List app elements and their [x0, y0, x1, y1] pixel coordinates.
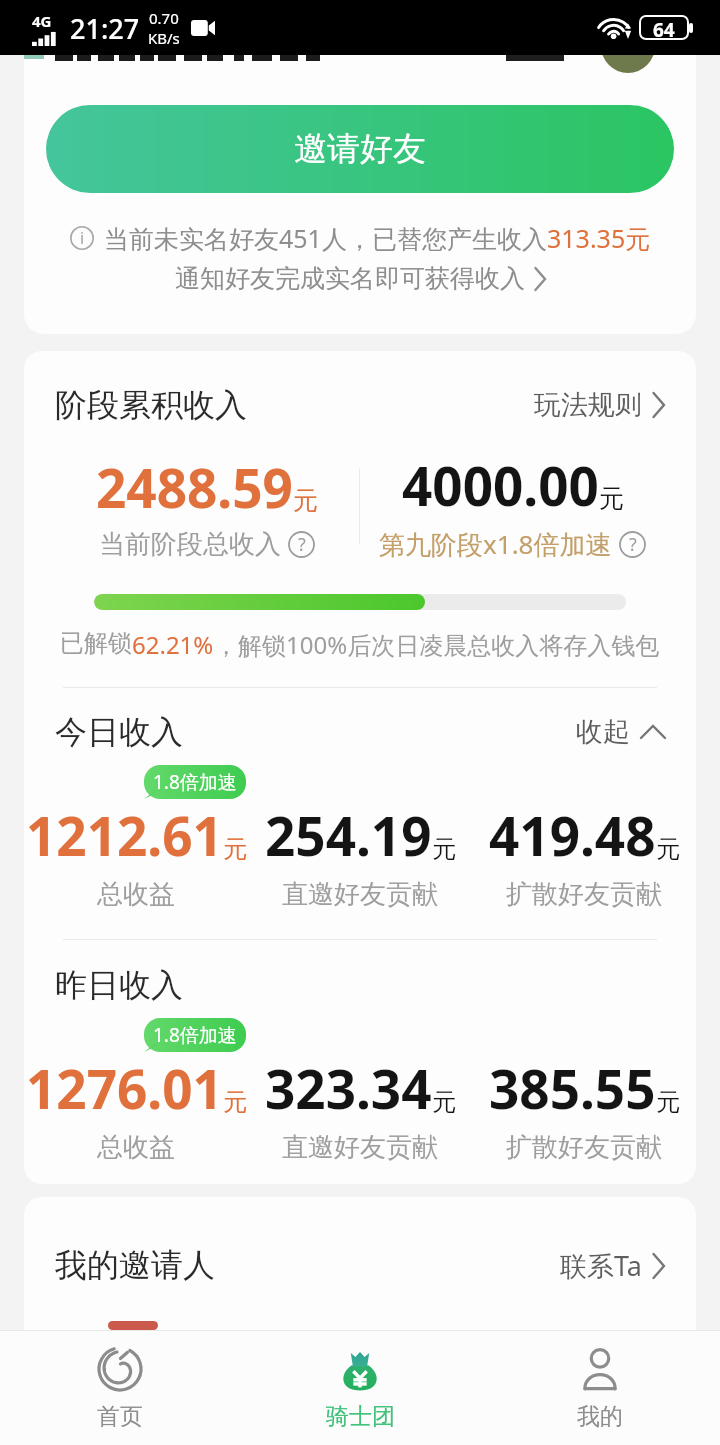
- button[interactable]: 邀请好友: [46, 105, 674, 193]
- staticText: 元: [599, 483, 624, 514]
- staticText: 元: [656, 834, 680, 864]
- staticText: 0.70: [149, 8, 179, 28]
- staticText: 我的: [577, 1402, 623, 1431]
- staticText: 我的邀请人: [55, 1245, 215, 1285]
- button[interactable]: 收起: [576, 715, 665, 749]
- button[interactable]: 通知好友完成实名即可获得收入: [24, 263, 696, 294]
- staticText: 首页: [97, 1402, 143, 1431]
- staticText: 今日收入: [55, 712, 183, 752]
- staticText: KB/s: [148, 28, 180, 48]
- staticText: 扩散好友贡献: [506, 1131, 662, 1164]
- staticText: 总收益: [97, 1131, 175, 1164]
- staticText: 419.48: [489, 799, 656, 871]
- staticText: 元: [223, 834, 247, 864]
- staticText: 当前阶段总收入: [99, 528, 281, 561]
- staticText: 1276.01: [26, 1052, 223, 1124]
- staticText: 总收益: [97, 878, 175, 911]
- staticText: 收起: [576, 715, 630, 749]
- staticText: 385.55: [489, 1052, 656, 1124]
- staticText: 64: [653, 17, 675, 38]
- staticText: 元: [432, 834, 456, 864]
- button[interactable]: 玩法规则: [534, 388, 665, 422]
- staticText: 62.21%: [132, 628, 214, 661]
- staticText: 4000.00: [402, 449, 599, 521]
- staticText: 直邀好友贡献: [282, 1131, 438, 1164]
- staticText: 323.34: [265, 1052, 432, 1124]
- staticText: 已解锁: [60, 628, 132, 658]
- staticText: 第九阶段x1.8倍加速: [379, 526, 612, 562]
- button[interactable]: 骑士团: [240, 1331, 480, 1445]
- staticText: 1.8倍加速: [153, 1022, 237, 1048]
- staticText: 昨日收入: [55, 965, 183, 1005]
- staticText: ?: [629, 532, 637, 557]
- button[interactable]: 联系Ta: [560, 1247, 665, 1284]
- button[interactable]: 首页: [0, 1331, 240, 1445]
- staticText: 邀请好友: [294, 128, 426, 170]
- staticText: 元: [656, 1087, 680, 1117]
- staticText: 通知好友完成实名即可获得收入: [175, 263, 525, 294]
- staticText: 元: [293, 485, 318, 516]
- staticText: 1212.61: [26, 799, 223, 871]
- other: 骑士团: [337, 1346, 383, 1392]
- staticText: 扩散好友贡献: [506, 878, 662, 911]
- staticText: 直邀好友贡献: [282, 878, 438, 911]
- staticText: 玩法规则: [534, 388, 642, 422]
- staticText: 元: [223, 1087, 247, 1117]
- other: 我的: [577, 1346, 623, 1392]
- staticText: 1.8倍加速: [153, 769, 237, 795]
- staticText: 254.19: [265, 799, 432, 871]
- staticText: ?: [298, 532, 306, 557]
- staticText: 骑士团: [326, 1402, 395, 1431]
- button[interactable]: 我的: [480, 1331, 720, 1445]
- staticText: 21:27: [70, 10, 140, 47]
- staticText: 313.35元: [547, 221, 651, 255]
- staticText: 阶段累积收入: [55, 385, 247, 425]
- other: 首页: [97, 1346, 143, 1392]
- staticText: 当前未实名好友451人，已替您产生收入: [104, 221, 547, 255]
- staticText: ，解锁100%后次日凌晨总收入将存入钱包: [214, 628, 660, 661]
- staticText: 4G: [32, 11, 52, 31]
- staticText: 联系Ta: [560, 1247, 642, 1284]
- staticText: i: [80, 227, 85, 249]
- staticText: 元: [432, 1087, 456, 1117]
- staticText: 2488.59: [96, 451, 293, 523]
